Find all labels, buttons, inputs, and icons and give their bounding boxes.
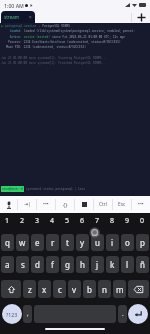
button[interactable]: Esc [113, 196, 131, 213]
button[interactable]: 3 [30, 214, 45, 228]
staticText: g [65, 259, 70, 270]
button[interactable]: k [106, 256, 119, 273]
button[interactable]: a [1, 256, 14, 273]
button[interactable]: 7 [90, 214, 105, 228]
button[interactable]: b [83, 280, 96, 298]
staticText: m [116, 284, 124, 295]
button[interactable]: 0 [135, 214, 150, 228]
button[interactable]: Enter [128, 304, 148, 324]
staticText: o [125, 237, 130, 248]
button[interactable]: p [136, 234, 149, 251]
staticText: c [58, 284, 62, 295]
staticText: stream [4, 14, 20, 20]
button[interactable] [128, 280, 149, 298]
staticText: since Fri 2024-06-21 01:00:00 UTC; 12s a… [52, 35, 125, 39]
staticText: 2 [20, 216, 25, 226]
staticText: x [42, 284, 47, 295]
staticText: 7 [95, 216, 100, 226]
staticText: h [80, 259, 85, 270]
button[interactable]: d [31, 256, 44, 273]
button[interactable]: 2 [15, 214, 30, 228]
staticText: v [72, 284, 77, 295]
button[interactable]: c [53, 280, 66, 298]
staticText: z [28, 284, 32, 295]
button[interactable]: , [23, 305, 32, 323]
staticText: p [140, 237, 145, 248]
button[interactable]: f [46, 256, 59, 273]
button[interactable]: 4 [45, 214, 60, 228]
button[interactable]: v [68, 280, 81, 298]
staticText: t [66, 237, 69, 248]
button[interactable]: m [113, 280, 126, 298]
staticText: ● [1, 24, 5, 28]
button[interactable]: o [121, 234, 134, 251]
button[interactable]: i [106, 234, 119, 251]
button[interactable]: y [76, 234, 89, 251]
staticText: 0 [140, 216, 145, 226]
staticText: 4 [50, 216, 55, 226]
staticText: i [111, 237, 114, 248]
staticText: × [29, 14, 32, 20]
staticText: , [27, 310, 29, 318]
button[interactable]: h [76, 256, 89, 273]
staticText: Ctrl [99, 201, 107, 208]
staticText: e [35, 237, 40, 248]
staticText: 3 [35, 216, 40, 226]
staticText: Jun 21 01:00:00 nova systemd[1]: Startin… [1, 56, 107, 60]
button[interactable]: stream [1, 11, 35, 23]
button[interactable]: Braces [56, 196, 74, 213]
staticText: systemctl status postgresql | less [26, 187, 85, 191]
button[interactable]: e [31, 234, 44, 251]
button[interactable]: 9 [120, 214, 135, 228]
button[interactable]: 1 [0, 214, 15, 228]
button[interactable]: Voice input [0, 196, 17, 213]
button[interactable]: New session [132, 11, 150, 23]
button[interactable] [1, 280, 21, 298]
button[interactable]: z [23, 280, 36, 298]
button[interactable]: g [61, 256, 74, 273]
button[interactable]: . [118, 305, 127, 323]
staticText: postgresql.service [5, 24, 37, 28]
button[interactable]: Options [132, 196, 150, 213]
staticText: k [110, 259, 115, 270]
staticText: ••• [43, 201, 49, 208]
button[interactable]: 6 [75, 214, 90, 228]
button[interactable]: r [46, 234, 59, 251]
button[interactable]: ?123 [2, 304, 22, 324]
button[interactable]: t [61, 234, 74, 251]
button[interactable]: j [91, 256, 104, 273]
staticText: 8 [110, 216, 115, 226]
staticText: - PostgreSQL RDBMS [37, 24, 70, 28]
staticText: Jun 21 01:00:00 nova systemd[1]: Finishe… [1, 61, 104, 65]
staticText: s [21, 259, 25, 270]
button[interactable]: Ctrl [94, 196, 112, 213]
staticText: 6 [80, 216, 85, 226]
staticText: nova@nova:~# [2, 187, 23, 191]
staticText: j [96, 259, 99, 270]
staticText: Loaded: [1, 29, 24, 33]
staticText: . [122, 310, 124, 318]
staticText: Active: [1, 35, 24, 39]
button[interactable]: x [38, 280, 51, 298]
button[interactable]: u [91, 234, 104, 251]
staticText: n [102, 284, 107, 295]
button[interactable]: w [16, 234, 29, 251]
button[interactable]: More [37, 196, 55, 213]
button[interactable]: Stop [75, 196, 93, 213]
button[interactable]: ñ [136, 256, 149, 273]
button[interactable]: n [98, 280, 111, 298]
button[interactable]: 5 [60, 214, 75, 228]
staticText: 5 [65, 216, 70, 226]
staticText: 9 [125, 216, 130, 226]
button[interactable]: s [16, 256, 29, 273]
button[interactable]: l [121, 256, 134, 273]
staticText: 1 [5, 216, 10, 226]
button[interactable]: q [1, 234, 14, 251]
staticText: u [95, 237, 100, 248]
button[interactable]: Tab [18, 196, 36, 213]
staticText: y [80, 237, 85, 248]
staticText: {} [63, 201, 68, 209]
button[interactable]: 8 [105, 214, 120, 228]
staticText: ?123 [6, 311, 18, 318]
